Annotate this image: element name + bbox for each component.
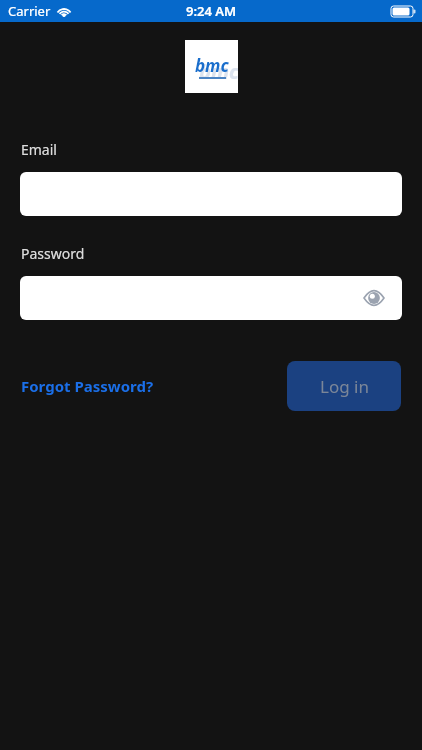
staticText: 9:24 AM [186,2,237,20]
button[interactable]: Forgot Password? [21,376,154,396]
staticText: Password [21,244,85,263]
staticText: Carrier [8,2,51,20]
staticText: Log in [320,375,369,398]
button[interactable]: Log in [287,361,401,411]
button[interactable] [20,172,402,216]
staticText: bmc [195,54,229,77]
staticText: bmc [199,58,238,85]
staticText: Email [21,140,57,159]
button[interactable] [20,276,402,320]
